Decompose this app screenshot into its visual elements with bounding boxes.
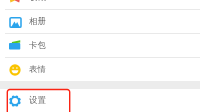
button[interactable]: 设置 <box>0 89 200 112</box>
button[interactable]: 收藏 <box>0 0 200 9</box>
button[interactable]: 表情 <box>0 58 200 81</box>
staticText: 表情 <box>29 64 46 75</box>
staticText: 收藏 <box>29 0 46 1</box>
staticText: 卡包 <box>29 40 46 51</box>
staticText: 设置 <box>29 95 46 106</box>
staticText: 相册 <box>29 16 46 27</box>
button[interactable]: 卡包 <box>0 34 200 57</box>
button[interactable]: 相册 <box>0 10 200 33</box>
